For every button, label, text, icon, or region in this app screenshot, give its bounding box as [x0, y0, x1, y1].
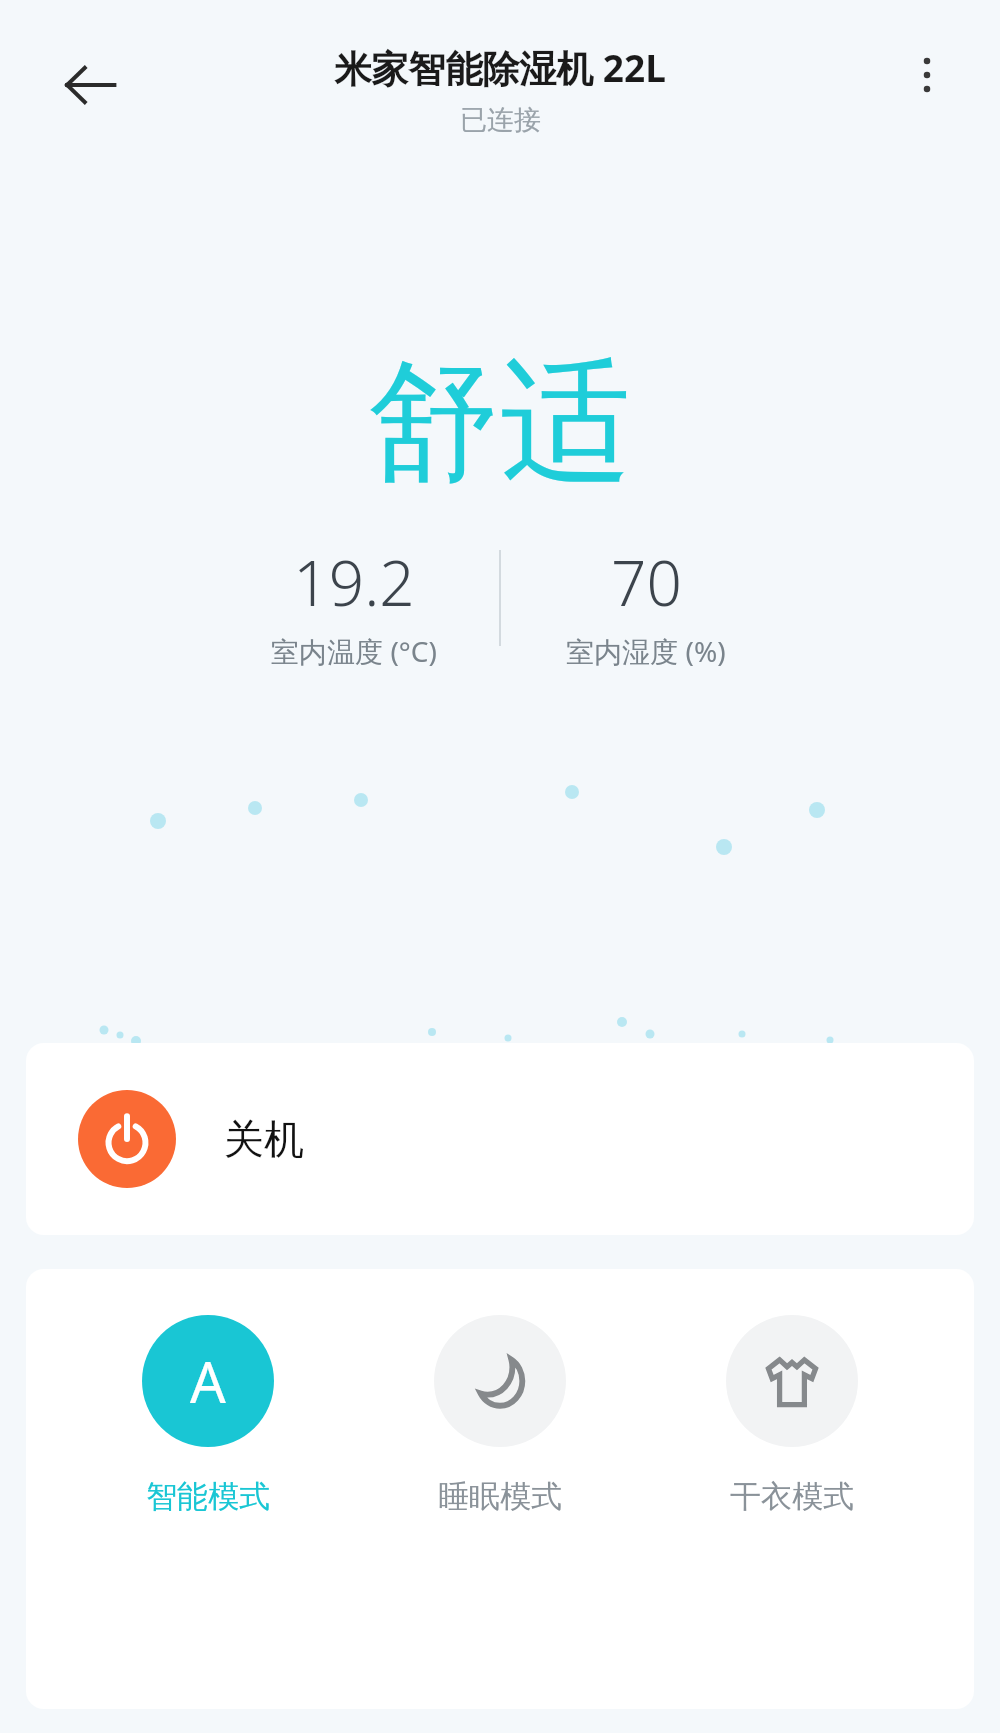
button[interactable]: 干衣模式	[682, 1315, 902, 1516]
staticText: 关机	[224, 1114, 304, 1164]
staticText: 米家智能除湿机 22L	[334, 42, 666, 93]
staticText: 已连接	[460, 103, 541, 137]
button[interactable]: 关机	[26, 1043, 974, 1235]
staticText: 干衣模式	[730, 1477, 854, 1516]
staticText: 70	[611, 540, 682, 624]
staticText: 舒适	[368, 340, 632, 506]
button[interactable]: Back	[40, 35, 140, 135]
button[interactable]: 睡眠模式	[390, 1315, 610, 1516]
staticText: A	[190, 1343, 226, 1419]
staticText: 睡眠模式	[438, 1477, 562, 1516]
staticText: 室内温度 (°C)	[271, 632, 437, 670]
button[interactable]: A	[98, 1315, 318, 1516]
staticText: 19.2	[293, 540, 415, 624]
staticText: 室内湿度 (%)	[566, 632, 726, 670]
staticText: 智能模式	[146, 1477, 270, 1516]
button[interactable]: More options	[882, 30, 972, 120]
